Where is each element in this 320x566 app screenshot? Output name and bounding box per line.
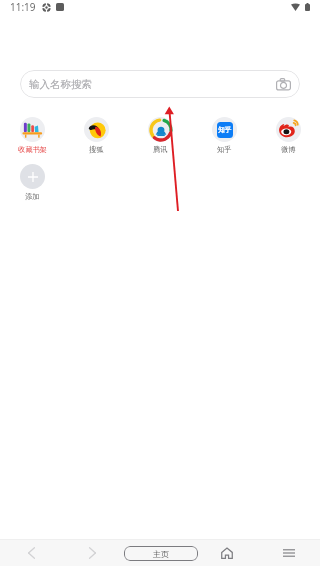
- staticText: 搜狐: [89, 145, 104, 154]
- staticText: 微博: [281, 145, 296, 154]
- staticText: 腾讯: [153, 145, 168, 154]
- button[interactable]: 输入名称搜索: [20, 70, 300, 98]
- button[interactable]: Scan with camera: [276, 78, 291, 91]
- button[interactable]: Back: [11, 540, 51, 566]
- button[interactable]: 搜狐: [84, 117, 109, 154]
- button[interactable]: 腾讯: [148, 117, 173, 154]
- staticText: 收藏书架: [18, 145, 47, 154]
- button[interactable]: 微博: [276, 117, 301, 154]
- button[interactable]: Forward: [72, 540, 112, 566]
- staticText: 11:19: [10, 0, 36, 14]
- button[interactable]: 知乎: [212, 117, 237, 154]
- staticText: 输入名称搜索: [29, 78, 92, 91]
- staticText: 知乎: [217, 145, 232, 154]
- button[interactable]: 添加: [20, 164, 45, 201]
- button[interactable]: Home: [207, 540, 247, 566]
- staticText: 主页: [153, 549, 169, 559]
- button[interactable]: 主页: [124, 546, 198, 561]
- staticText: 添加: [25, 192, 40, 201]
- staticText: 知乎: [218, 126, 232, 134]
- button[interactable]: 收藏书架: [18, 117, 47, 154]
- button[interactable]: Menu: [269, 540, 309, 566]
